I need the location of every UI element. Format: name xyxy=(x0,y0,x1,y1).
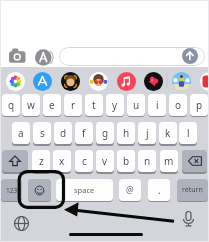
staticText: h xyxy=(123,126,130,140)
button[interactable] xyxy=(28,179,51,201)
button[interactable]: k xyxy=(159,122,177,144)
button[interactable]: l xyxy=(179,122,197,144)
button[interactable]: @ xyxy=(119,179,141,201)
staticText: l xyxy=(187,126,190,140)
staticText: a xyxy=(18,126,24,140)
button[interactable]: m xyxy=(160,150,178,172)
button[interactable] xyxy=(172,72,191,91)
staticText: w xyxy=(27,98,35,112)
staticText: o xyxy=(175,98,182,112)
button[interactable]: p xyxy=(190,94,208,116)
staticText: 123 xyxy=(6,186,18,195)
button[interactable]: q xyxy=(2,94,20,116)
button[interactable] xyxy=(6,72,25,91)
button[interactable] xyxy=(180,210,197,228)
button[interactable] xyxy=(13,215,30,232)
button[interactable]: f xyxy=(75,122,93,144)
button[interactable] xyxy=(61,72,80,91)
button[interactable]: z xyxy=(32,150,50,172)
button[interactable] xyxy=(8,47,27,64)
staticText: i xyxy=(156,98,159,112)
staticText: v xyxy=(102,154,108,168)
button[interactable]: t xyxy=(85,94,103,116)
button[interactable]: h xyxy=(117,122,135,144)
staticText: e xyxy=(49,98,55,112)
button[interactable]: u xyxy=(127,94,145,116)
button[interactable]: v xyxy=(96,150,114,172)
button[interactable]: space xyxy=(56,179,113,201)
staticText: q xyxy=(8,98,15,112)
button[interactable]: s xyxy=(33,122,51,144)
staticText: @ xyxy=(126,184,134,196)
button[interactable]: return xyxy=(177,179,208,201)
staticText: r xyxy=(71,98,76,112)
staticText: y xyxy=(112,98,118,112)
staticText: g xyxy=(102,126,109,140)
staticText: s xyxy=(40,126,45,140)
button[interactable] xyxy=(182,48,198,64)
staticText: t xyxy=(92,98,96,112)
button[interactable] xyxy=(33,72,52,91)
staticText: c xyxy=(82,154,87,168)
staticText: return xyxy=(182,185,203,195)
button[interactable]: a xyxy=(12,122,30,144)
button[interactable]: i xyxy=(148,94,166,116)
button[interactable]: c xyxy=(75,150,93,172)
button[interactable]: x xyxy=(53,150,71,172)
button[interactable]: w xyxy=(22,94,40,116)
staticText: m xyxy=(164,154,174,168)
staticText: x xyxy=(59,154,65,168)
button[interactable]: g xyxy=(96,122,114,144)
button[interactable] xyxy=(200,72,209,91)
button[interactable] xyxy=(2,150,28,172)
button[interactable]: n xyxy=(138,150,156,172)
button[interactable]: d xyxy=(54,122,72,144)
staticText: u xyxy=(133,98,140,112)
button[interactable]: e xyxy=(43,94,61,116)
button[interactable] xyxy=(89,72,108,91)
button[interactable] xyxy=(35,49,56,66)
button[interactable]: r xyxy=(64,94,82,116)
staticText: space xyxy=(74,185,95,195)
button[interactable] xyxy=(182,150,207,172)
button[interactable] xyxy=(144,72,163,91)
staticText: p xyxy=(196,98,203,112)
staticText: f xyxy=(82,126,86,140)
button[interactable] xyxy=(117,72,136,91)
staticText: j xyxy=(146,126,149,140)
staticText: . xyxy=(158,183,161,197)
button[interactable]: . xyxy=(148,179,170,201)
button[interactable] xyxy=(59,47,205,66)
button[interactable]: y xyxy=(106,94,124,116)
staticText: d xyxy=(60,126,67,140)
button[interactable]: 123 xyxy=(1,179,22,201)
staticText: b xyxy=(123,154,130,168)
staticText: z xyxy=(39,154,44,168)
button[interactable]: o xyxy=(169,94,187,116)
button[interactable]: b xyxy=(117,150,135,172)
staticText: k xyxy=(165,126,171,140)
button[interactable]: j xyxy=(138,122,156,144)
staticText: n xyxy=(144,154,151,168)
